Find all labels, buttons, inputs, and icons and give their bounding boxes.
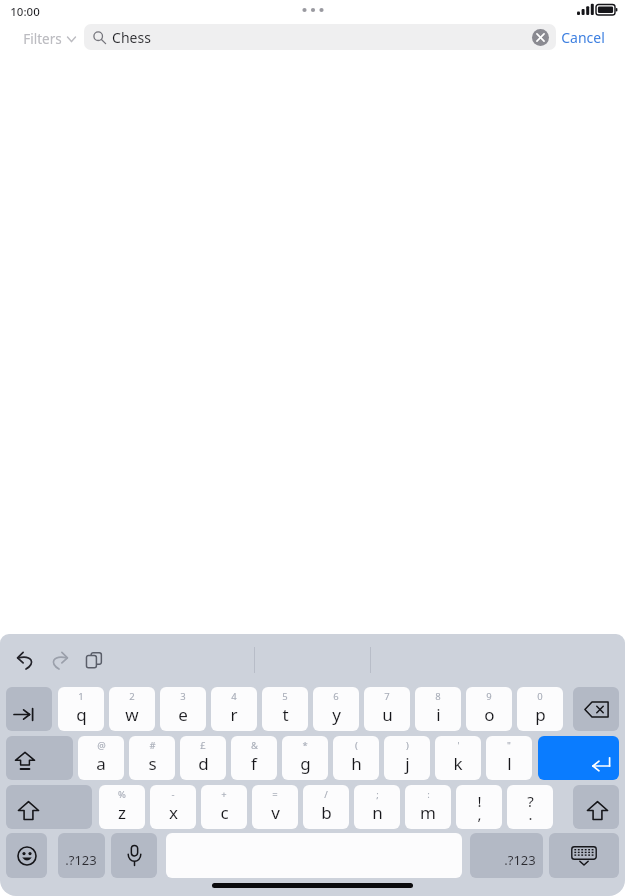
staticText: ) [406, 739, 409, 752]
button[interactable]: 1 [58, 687, 104, 731]
button[interactable]: 3 [160, 687, 206, 731]
staticText: y [332, 703, 341, 726]
staticText: c [220, 801, 229, 824]
staticText: i [436, 703, 441, 726]
button[interactable]: & [231, 736, 277, 780]
staticText: Filters [23, 30, 62, 48]
staticText: a [96, 752, 106, 775]
staticText: 2 [129, 690, 135, 703]
staticText: ; [376, 788, 379, 801]
button[interactable]: ; [354, 785, 400, 829]
button[interactable]: Redo [44, 645, 74, 675]
staticText: e [178, 703, 188, 726]
staticText: - [171, 788, 175, 801]
staticText: ' [457, 739, 460, 752]
button[interactable]: - [150, 785, 196, 829]
button[interactable]: Clear search [532, 29, 549, 46]
staticText: " [507, 739, 511, 752]
button[interactable]: 8 [415, 687, 461, 731]
button[interactable]: 9 [466, 687, 512, 731]
button[interactable]: 6 [313, 687, 359, 731]
staticText: n [372, 801, 383, 824]
button[interactable]: @ [78, 736, 124, 780]
staticText: k [453, 752, 463, 775]
button[interactable]: Paste [79, 645, 109, 675]
staticText: b [321, 801, 332, 824]
other: Emoji [6, 833, 47, 878]
staticText: o [484, 703, 495, 726]
staticText: , [477, 804, 482, 824]
staticText: q [76, 703, 87, 726]
button[interactable]: .?123 [470, 833, 543, 878]
button[interactable]: % [99, 785, 145, 829]
button[interactable]: ! [456, 785, 502, 829]
button[interactable]: Caps lock [6, 736, 73, 780]
staticText: m [420, 801, 436, 824]
button[interactable]: / [303, 785, 349, 829]
other: Voice input [111, 833, 157, 878]
button[interactable]: Hide keyboard [549, 833, 619, 878]
staticText: .?123 [504, 851, 536, 869]
staticText: Chess [112, 28, 151, 47]
staticText: ( [355, 739, 358, 752]
staticText: l [507, 752, 512, 775]
staticText: t [282, 703, 289, 726]
button[interactable]: Return [538, 736, 619, 780]
button[interactable]: Backspace [573, 687, 619, 731]
staticText: 6 [333, 690, 339, 703]
staticText: d [198, 752, 209, 775]
button[interactable]: + [201, 785, 247, 829]
staticText: # [149, 739, 156, 752]
staticText: p [535, 703, 546, 726]
button[interactable]: ' [435, 736, 481, 780]
button[interactable]: Emoji [6, 833, 47, 878]
button[interactable]: £ [180, 736, 226, 780]
staticText: + [221, 788, 227, 801]
staticText: z [118, 801, 126, 824]
staticText: £ [200, 739, 206, 752]
staticText: 10:00 [10, 4, 40, 20]
button[interactable]: ? [507, 785, 553, 829]
button[interactable]: Chess [84, 24, 556, 50]
button[interactable]: .?123 [58, 833, 105, 878]
button[interactable]: Voice input [111, 833, 157, 878]
button[interactable]: Cancel [558, 25, 608, 50]
other: Caps lock [6, 736, 73, 780]
staticText: 9 [486, 690, 492, 703]
button[interactable]: Undo [11, 645, 41, 675]
staticText: h [351, 752, 362, 775]
other: Backspace [573, 687, 619, 731]
staticText: : [427, 788, 430, 801]
staticText: x [169, 801, 178, 824]
staticText: f [251, 752, 257, 775]
button[interactable]: 5 [262, 687, 308, 731]
staticText: @ [97, 739, 106, 752]
staticText: 4 [231, 690, 237, 703]
button[interactable]: 7 [364, 687, 410, 731]
button[interactable]: " [486, 736, 532, 780]
staticText: 3 [180, 690, 186, 703]
button[interactable]: ) [384, 736, 430, 780]
staticText: ! [477, 791, 482, 811]
button[interactable]: Shift [6, 785, 92, 829]
staticText: = [272, 788, 278, 801]
button[interactable]: # [129, 736, 175, 780]
button[interactable]: 0 [517, 687, 563, 731]
button[interactable]: * [282, 736, 328, 780]
staticText: & [251, 739, 258, 752]
button[interactable]: Tab [6, 687, 52, 731]
staticText: / [324, 788, 328, 801]
button[interactable]: = [252, 785, 298, 829]
button[interactable]: : [405, 785, 451, 829]
staticText: j [405, 752, 410, 775]
button[interactable]: 2 [109, 687, 155, 731]
staticText: .?123 [65, 851, 97, 869]
button[interactable]: Filters [20, 27, 79, 51]
button[interactable]: Shift [573, 785, 619, 829]
staticText: ? [527, 791, 534, 811]
button[interactable]: 4 [211, 687, 257, 731]
other: Shift [6, 785, 92, 829]
button[interactable]: ( [333, 736, 379, 780]
staticText: 5 [282, 690, 288, 703]
